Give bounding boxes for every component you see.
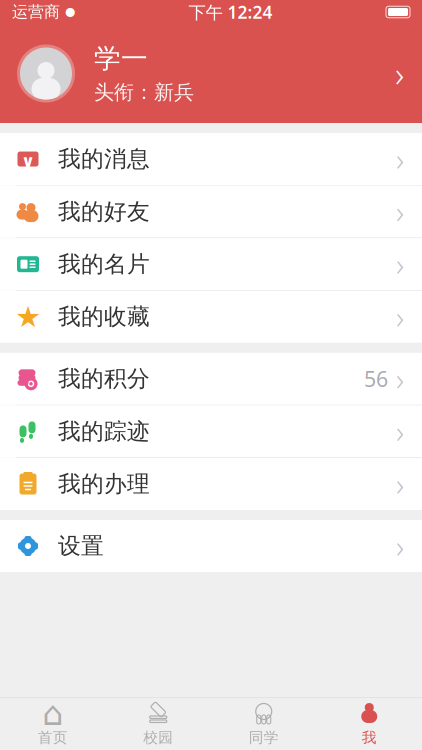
staticText: ★: [15, 300, 41, 333]
staticText: 我的积分: [58, 365, 150, 393]
staticText: 我: [362, 728, 377, 746]
staticText: ∨: [21, 151, 35, 171]
staticText: 头衔：新兵: [94, 80, 194, 105]
staticText: 我的踪迹: [58, 417, 150, 445]
staticText: ›: [395, 50, 404, 96]
button[interactable]: 同学: [211, 698, 316, 750]
staticText: 下午 12:24: [188, 0, 272, 23]
staticText: 我的收藏: [58, 303, 150, 331]
staticText: 首页: [38, 728, 68, 746]
staticText: 同学: [249, 728, 279, 746]
staticText: 我的好友: [58, 198, 150, 225]
button[interactable]: ⌂: [0, 698, 105, 750]
staticText: ›: [396, 296, 404, 337]
button[interactable]: 校园: [105, 698, 211, 750]
staticText: 学一: [94, 42, 148, 75]
staticText: ›: [396, 358, 404, 399]
staticText: 校园: [143, 728, 173, 746]
button[interactable]: 我: [316, 698, 422, 750]
staticText: 我的消息: [58, 145, 150, 173]
staticText: 56: [364, 365, 388, 393]
button[interactable]: 我的好友: [0, 186, 422, 238]
staticText: 我的名片: [58, 250, 150, 278]
button[interactable]: 我的踪迹: [0, 405, 422, 457]
staticText: 设置: [58, 532, 104, 560]
button[interactable]: 我的积分: [0, 353, 422, 405]
staticText: 我的办理: [58, 470, 150, 498]
staticText: ›: [396, 411, 404, 452]
button[interactable]: 设置: [0, 520, 422, 572]
staticText: ⌂: [42, 695, 63, 732]
staticText: ›: [396, 526, 404, 566]
staticText: ›: [396, 464, 404, 504]
button[interactable]: 我的名片: [0, 238, 422, 290]
staticText: ●: [65, 5, 75, 18]
button[interactable]: ∨: [0, 133, 422, 185]
staticText: 运营商: [12, 2, 60, 22]
staticText: ›: [396, 244, 404, 284]
staticText: ›: [396, 139, 404, 179]
button[interactable]: 学一: [0, 24, 422, 123]
button[interactable]: 我的办理: [0, 458, 422, 510]
staticText: ›: [396, 191, 404, 232]
button[interactable]: ★: [0, 291, 422, 343]
